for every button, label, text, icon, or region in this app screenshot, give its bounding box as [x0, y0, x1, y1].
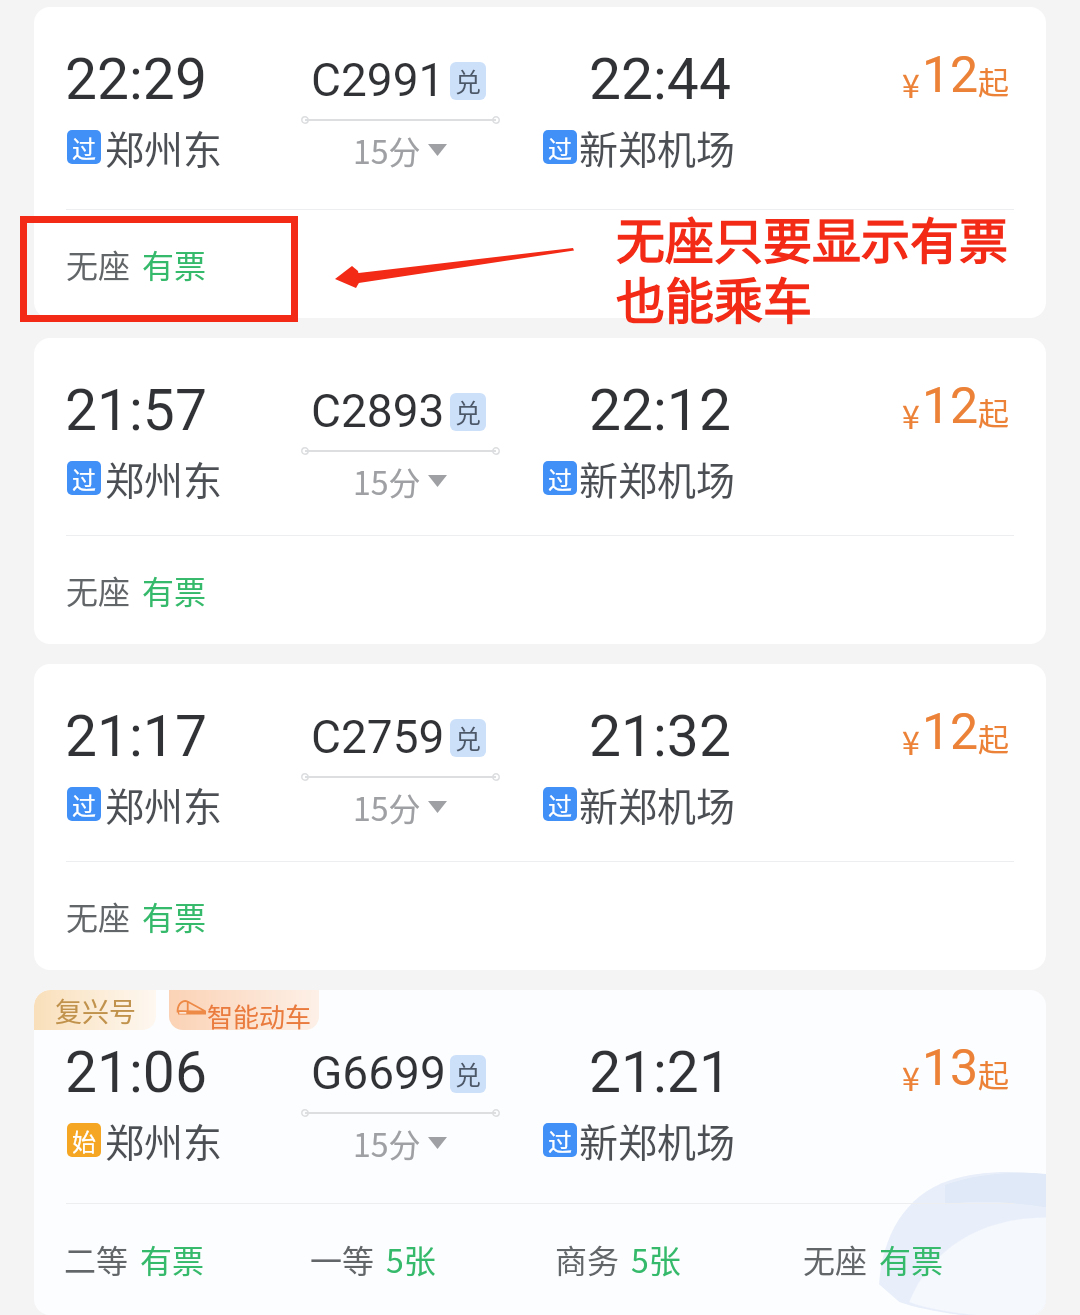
button[interactable]: 无座: [66, 567, 207, 613]
staticText: 过: [72, 787, 96, 821]
staticText: 新郑机场: [579, 776, 736, 832]
staticText: 22:12: [589, 377, 731, 444]
staticText: 15分: [353, 458, 421, 504]
button[interactable]: ¥: [854, 34, 1044, 144]
staticText: 郑州东: [105, 119, 223, 175]
button[interactable]: 21:17: [34, 664, 1046, 970]
staticText: 起: [978, 1051, 1009, 1096]
staticText: 13: [922, 1039, 979, 1098]
staticText: 始: [72, 1123, 96, 1157]
staticText: 12: [922, 377, 979, 436]
staticText: 21:17: [65, 703, 207, 770]
staticText: 有票: [142, 241, 207, 287]
staticText: 过: [548, 787, 572, 821]
staticText: 复兴号: [55, 991, 136, 1030]
button[interactable]: 22:29: [34, 7, 1046, 318]
staticText: 15分: [353, 127, 421, 173]
staticText: 15分: [353, 1120, 421, 1166]
button[interactable]: 无座: [803, 1236, 944, 1282]
staticText: 有票: [142, 893, 207, 939]
staticText: ¥: [902, 1054, 920, 1100]
staticText: 无座: [66, 241, 131, 287]
staticText: G6699: [311, 1046, 446, 1100]
staticText: 新郑机场: [579, 450, 736, 506]
staticText: 5张: [386, 1236, 436, 1282]
staticText: 新郑机场: [579, 1112, 736, 1168]
staticText: 22:29: [65, 46, 207, 113]
button[interactable]: Show stops: [353, 458, 447, 504]
staticText: ¥: [902, 392, 920, 438]
button[interactable]: Show stops: [353, 784, 447, 830]
staticText: 郑州东: [105, 450, 223, 506]
staticText: 起: [978, 58, 1009, 103]
staticText: 无座: [66, 893, 131, 939]
staticText: 21:21: [589, 1039, 731, 1106]
staticText: 起: [978, 389, 1009, 434]
staticText: 兑: [455, 62, 482, 100]
button[interactable]: 复兴号: [34, 990, 1046, 1315]
staticText: ¥: [902, 718, 920, 764]
staticText: 22:44: [589, 46, 731, 113]
staticText: 12: [922, 46, 979, 105]
staticText: 有票: [142, 567, 207, 613]
staticText: 也能乘车: [616, 262, 813, 333]
staticText: 过: [548, 1123, 572, 1157]
staticText: 有票: [140, 1236, 205, 1282]
staticText: 郑州东: [105, 1112, 223, 1168]
staticText: C2991: [311, 53, 445, 107]
staticText: 有票: [879, 1236, 944, 1282]
staticText: 过: [548, 130, 572, 164]
staticText: 智能动车: [207, 997, 312, 1030]
staticText: 新郑机场: [579, 119, 736, 175]
staticText: 无座: [66, 567, 131, 613]
staticText: 21:57: [65, 377, 207, 444]
staticText: 5张: [631, 1236, 681, 1282]
staticText: 商务: [555, 1236, 620, 1282]
staticText: 15分: [353, 784, 421, 830]
button[interactable]: ¥: [854, 1027, 1044, 1137]
button[interactable]: 二等: [64, 1236, 205, 1282]
button[interactable]: 商务: [555, 1236, 681, 1282]
staticText: 兑: [455, 719, 482, 757]
staticText: 兑: [455, 393, 482, 431]
button[interactable]: 21:57: [34, 338, 1046, 644]
staticText: 兑: [455, 1055, 482, 1093]
button[interactable]: Show stops: [353, 127, 447, 173]
button[interactable]: ¥: [854, 691, 1044, 801]
staticText: C2759: [311, 710, 445, 764]
staticText: 过: [72, 130, 96, 164]
staticText: 郑州东: [105, 776, 223, 832]
staticText: 12: [922, 703, 979, 762]
staticText: 21:06: [65, 1039, 207, 1106]
staticText: 起: [978, 715, 1009, 760]
staticText: 一等: [310, 1236, 375, 1282]
staticText: ¥: [902, 61, 920, 107]
staticText: 过: [548, 461, 572, 495]
staticText: 无座只要显示有票: [616, 202, 1009, 273]
staticText: 过: [72, 461, 96, 495]
staticText: 无座: [803, 1236, 868, 1282]
button[interactable]: Show stops: [353, 1120, 447, 1166]
button[interactable]: 无座: [66, 241, 207, 287]
staticText: 二等: [64, 1236, 129, 1282]
staticText: 21:32: [589, 703, 731, 770]
button[interactable]: 无座: [66, 893, 207, 939]
staticText: C2893: [311, 384, 445, 438]
button[interactable]: ¥: [854, 365, 1044, 475]
button[interactable]: 一等: [310, 1236, 436, 1282]
